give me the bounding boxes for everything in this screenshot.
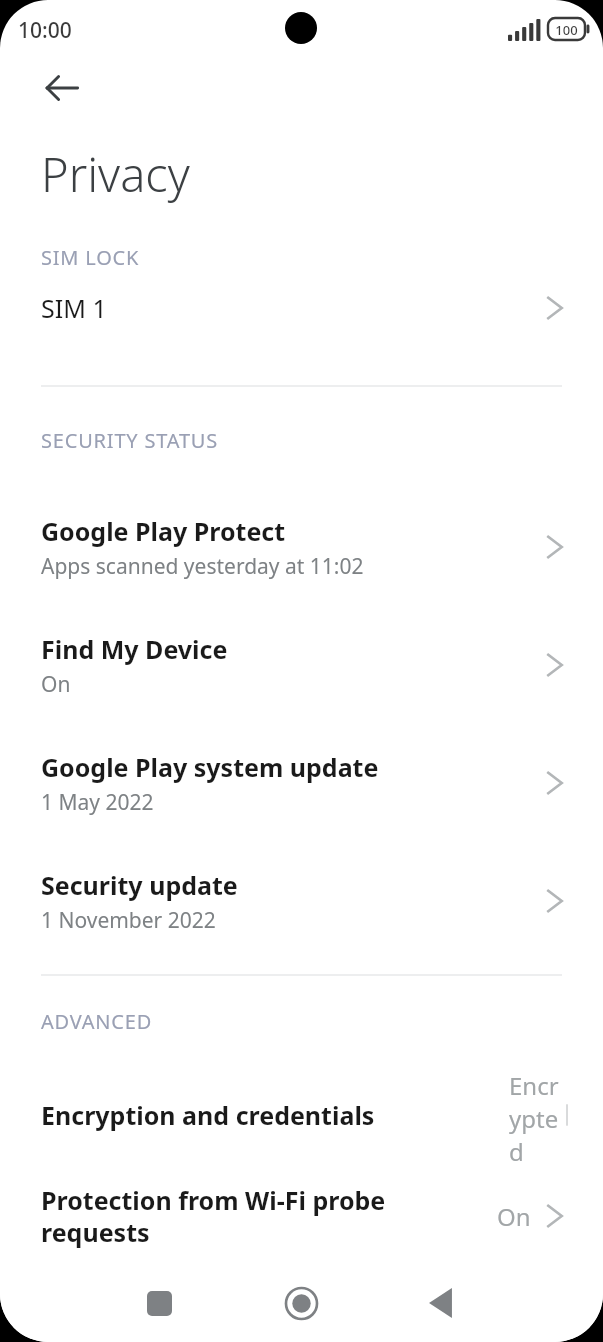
staticText: Security update xyxy=(41,868,238,902)
button[interactable]: Security update xyxy=(0,842,603,960)
button[interactable]: Google Play Protect xyxy=(0,488,603,606)
button[interactable]: Home xyxy=(270,1272,332,1334)
button[interactable]: Back xyxy=(30,56,94,120)
staticText: Find My Device xyxy=(41,632,228,666)
staticText: On xyxy=(497,1200,531,1233)
staticText: On xyxy=(41,670,71,699)
staticText: Privacy xyxy=(41,142,190,206)
staticText: 100 xyxy=(548,21,585,43)
button[interactable]: SIM 1 xyxy=(0,271,603,345)
staticText: Google Play system update xyxy=(41,750,379,784)
staticText: Apps scanned yesterday at 11:02 xyxy=(41,552,364,581)
staticText: Protection from Wi-Fi probe requests xyxy=(41,1183,401,1249)
button[interactable]: Google Play system update xyxy=(0,724,603,842)
staticText: Google Play Protect xyxy=(41,514,286,548)
staticText: ADVANCED xyxy=(41,1008,153,1035)
staticText: 1 November 2022 xyxy=(41,906,216,935)
button[interactable]: Back xyxy=(410,1272,472,1334)
button[interactable]: Protection from Wi-Fi probe requests xyxy=(0,1161,603,1271)
staticText: Encrypted xyxy=(509,1069,567,1161)
staticText: Encryption and credentials xyxy=(41,1098,375,1132)
staticText: 10:00 xyxy=(18,16,72,45)
staticText: SECURITY STATUS xyxy=(41,427,219,454)
staticText: SIM LOCK xyxy=(41,244,140,271)
staticText: 1 May 2022 xyxy=(41,788,154,817)
button[interactable]: Encryption and credentials xyxy=(0,1069,603,1161)
staticText: SIM 1 xyxy=(41,291,107,325)
button[interactable]: Recents xyxy=(128,1272,190,1334)
button[interactable]: Find My Device xyxy=(0,606,603,724)
